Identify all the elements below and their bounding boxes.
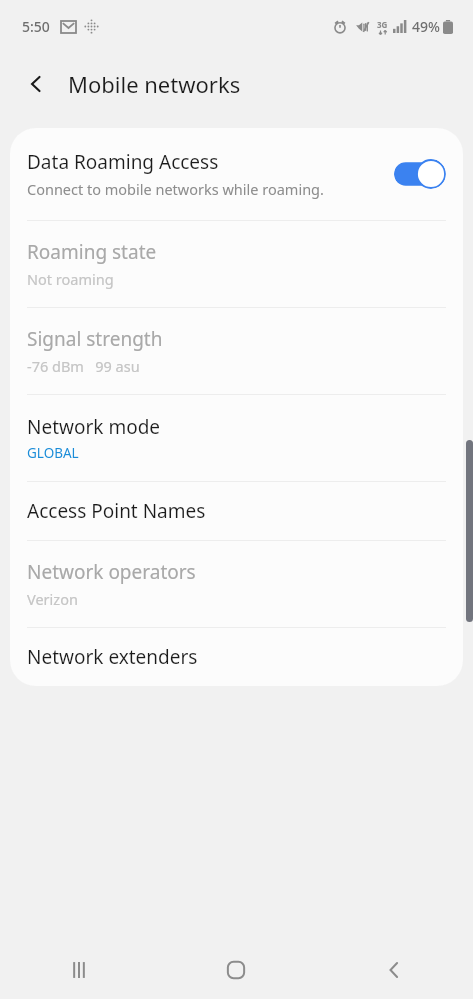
- button[interactable]: Network extenders: [10, 628, 463, 686]
- staticText: Data Roaming Access: [27, 149, 219, 175]
- staticText: 3G: [377, 19, 388, 30]
- button[interactable]: Roaming state: [10, 221, 463, 307]
- staticText: Network extenders: [27, 644, 198, 670]
- staticText: Connect to mobile networks while roaming…: [27, 179, 324, 199]
- button[interactable]: Data Roaming Access: [10, 128, 463, 220]
- button[interactable]: Home: [157, 941, 315, 999]
- staticText: Mobile networks: [68, 69, 241, 99]
- button[interactable]: Back: [12, 60, 60, 108]
- button[interactable]: Back: [315, 941, 473, 999]
- staticText: 49%: [412, 17, 440, 36]
- button[interactable]: Network operators: [10, 541, 463, 627]
- staticText: Network mode: [27, 414, 161, 440]
- staticText: Not roaming: [27, 269, 114, 289]
- staticText: Access Point Names: [27, 498, 206, 524]
- button[interactable]: Network mode: [10, 395, 463, 481]
- button[interactable]: Recent apps: [0, 941, 157, 999]
- staticText: -76 dBm 99 asu: [27, 356, 140, 376]
- button[interactable]: Data Roaming Access toggle: [394, 159, 446, 189]
- staticText: GLOBAL: [27, 444, 79, 462]
- staticText: Network operators: [27, 559, 196, 585]
- staticText: Roaming state: [27, 239, 157, 265]
- staticText: 5:50: [22, 17, 50, 36]
- button[interactable]: Signal strength: [10, 308, 463, 394]
- staticText: Verizon: [27, 589, 78, 609]
- button[interactable]: Access Point Names: [10, 482, 463, 540]
- staticText: Signal strength: [27, 326, 163, 352]
